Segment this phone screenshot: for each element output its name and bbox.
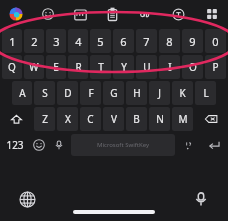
staticText: U (143, 60, 151, 74)
button[interactable]: Period (178, 133, 199, 157)
button[interactable]: Shift (1, 107, 32, 131)
button[interactable]: 1 (2, 29, 22, 53)
button[interactable]: N (149, 107, 170, 131)
button[interactable]: W (24, 55, 44, 79)
staticText: J (158, 86, 161, 100)
button[interactable]: B (126, 107, 147, 131)
staticText: Y (121, 60, 127, 74)
staticText: Q (8, 60, 16, 74)
staticText: M (178, 112, 188, 126)
staticText: C (87, 112, 94, 126)
button[interactable]: Q (2, 55, 22, 79)
staticText: H (133, 86, 141, 100)
staticText: T (98, 60, 104, 74)
button[interactable]: K (172, 81, 193, 105)
button[interactable]: J (149, 81, 170, 105)
button[interactable]: GIF (64, 0, 96, 28)
button[interactable]: 5 (90, 29, 111, 53)
button[interactable]: Enter (201, 133, 227, 157)
staticText: 7 (143, 34, 150, 49)
staticText: R (75, 60, 82, 74)
button[interactable]: X (57, 107, 78, 131)
staticText: N (156, 112, 164, 126)
staticText: A (19, 86, 26, 100)
button[interactable]: Backspace (195, 107, 227, 131)
button[interactable]: I (159, 55, 180, 79)
button[interactable]: 123 (0, 132, 29, 158)
staticText: Z (42, 112, 48, 126)
staticText: S (42, 86, 48, 100)
staticText: X (65, 112, 71, 126)
button[interactable]: Emoji keyboard (30, 133, 48, 157)
button[interactable]: Clipboard (96, 0, 129, 28)
button[interactable]: Microsoft SwiftKey (71, 134, 175, 156)
button[interactable]: 4 (68, 29, 88, 53)
button[interactable]: L (195, 81, 216, 105)
staticText: 8 (166, 34, 173, 49)
button[interactable]: 2 (24, 29, 44, 53)
button[interactable]: Voice search (188, 186, 214, 212)
button[interactable]: 9 (182, 29, 203, 53)
staticText: 123 (6, 138, 24, 152)
button[interactable]: Y (113, 55, 134, 79)
staticText: 4 (75, 34, 82, 49)
button[interactable]: A (12, 81, 32, 105)
button[interactable]: 0 (205, 29, 226, 53)
staticText: B (133, 112, 140, 126)
staticText: L (203, 86, 209, 100)
button[interactable]: Translate (129, 0, 162, 28)
button[interactable]: H (126, 81, 147, 105)
staticText: W (29, 60, 39, 74)
staticText: 0 (212, 34, 219, 49)
staticText: K (179, 86, 186, 100)
button[interactable]: F (80, 81, 101, 105)
button[interactable]: R (68, 55, 88, 79)
button[interactable]: Emoji (32, 0, 64, 28)
staticText: V (111, 112, 117, 126)
button[interactable]: More options (195, 0, 228, 28)
button[interactable]: Sticker (162, 0, 195, 28)
staticText: G (110, 86, 118, 100)
button[interactable]: 6 (113, 29, 134, 53)
button[interactable]: SwiftKey menu (0, 0, 32, 28)
button[interactable]: D (57, 81, 78, 105)
staticText: P (212, 60, 219, 74)
staticText: 5 (97, 34, 104, 49)
button[interactable]: U (136, 55, 157, 79)
staticText: 6 (120, 34, 127, 49)
staticText: 9 (189, 34, 196, 49)
button[interactable]: Z (34, 107, 55, 131)
button[interactable]: T (90, 55, 111, 79)
button[interactable]: C (80, 107, 101, 131)
button[interactable]: 3 (46, 29, 66, 53)
staticText: E (53, 60, 59, 74)
button[interactable]: P (205, 55, 226, 79)
staticText: F (88, 86, 94, 100)
staticText: I (168, 60, 172, 74)
button[interactable]: 7 (136, 29, 157, 53)
staticText: 3 (53, 34, 60, 49)
button[interactable]: 8 (159, 29, 180, 53)
staticText: O (189, 60, 197, 74)
button[interactable]: Voice input (50, 133, 68, 157)
button[interactable]: O (182, 55, 203, 79)
staticText: 2 (31, 34, 38, 49)
staticText: Microsoft SwiftKey (97, 141, 149, 149)
button[interactable]: Change language (14, 186, 40, 212)
button[interactable]: E (46, 55, 66, 79)
button[interactable]: V (103, 107, 124, 131)
button[interactable]: G (103, 81, 124, 105)
staticText: 1 (9, 34, 16, 49)
button[interactable]: S (34, 81, 55, 105)
staticText: D (64, 86, 72, 100)
button[interactable]: M (172, 107, 193, 131)
